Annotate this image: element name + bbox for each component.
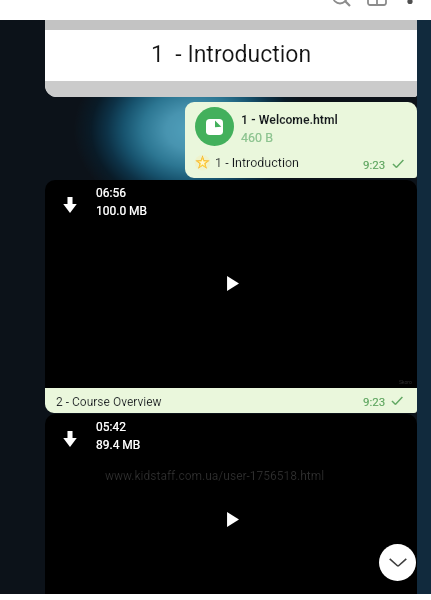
staticText: 9:23 <box>363 395 386 408</box>
staticText: 100.0 MB <box>96 204 148 218</box>
button[interactable]: Calendar <box>363 0 391 20</box>
staticText: 89.4 MB <box>96 438 141 452</box>
button[interactable]: Search <box>328 0 354 20</box>
button[interactable]: 1 - Welcome.html <box>185 102 417 178</box>
staticText: 1 - Introduction <box>151 41 312 68</box>
button[interactable]: More options <box>399 0 423 20</box>
button[interactable]: Download <box>45 180 417 388</box>
button[interactable]: 1 - Introduction <box>45 20 417 97</box>
staticText: 06:56 <box>96 186 126 200</box>
staticText: www.kidstaff.com.ua/user-1756518.html <box>105 469 325 483</box>
other: Download <box>63 431 77 447</box>
button[interactable]: Download <box>45 414 417 594</box>
staticText: 460 B <box>241 130 273 145</box>
staticText: 1 - Welcome.html <box>241 113 338 127</box>
staticText: Skoro <box>399 379 412 385</box>
staticText: 2 - Course Overview <box>56 395 162 409</box>
staticText: 05:42 <box>96 420 126 434</box>
other: Download <box>63 197 77 213</box>
staticText: 9:23 <box>363 158 386 171</box>
button[interactable]: Scroll to bottom <box>379 544 416 581</box>
staticText: 1 - Introduction <box>215 155 299 170</box>
button[interactable]: 2 - Course Overview <box>45 388 417 413</box>
